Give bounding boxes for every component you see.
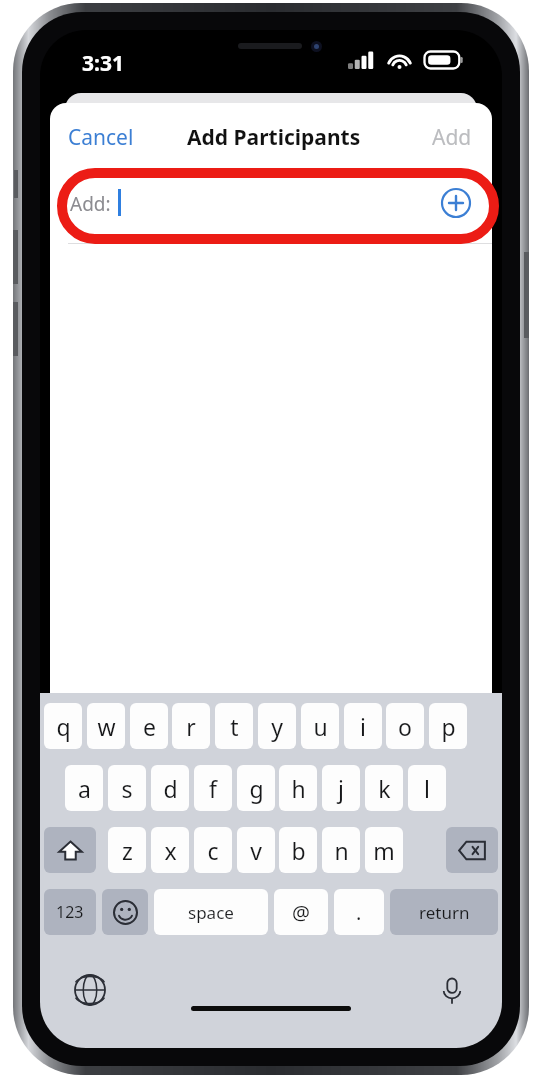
button[interactable]: Add contact [440,187,472,219]
button[interactable]: m [365,827,403,873]
staticText: y [271,711,283,742]
button[interactable]: k [365,765,403,811]
staticText: j [338,773,344,804]
button[interactable]: i [344,703,382,749]
staticText: 3:31 [82,49,124,78]
button[interactable]: q [44,703,82,749]
button[interactable]: z [108,827,146,873]
button[interactable]: a [65,765,103,811]
button[interactable]: 123 [44,889,96,935]
staticText: 123 [56,901,84,923]
button[interactable]: g [237,765,275,811]
staticText: m [373,835,395,866]
staticText: s [121,773,133,804]
button[interactable]: Cancel [60,117,142,158]
button[interactable]: Backspace [446,827,498,873]
button[interactable]: o [386,703,424,749]
staticText: g [249,773,264,804]
button[interactable]: n [322,827,360,873]
staticText: v [250,835,262,866]
button[interactable]: Change keyboard [72,972,108,1008]
staticText: l [424,773,430,804]
button[interactable]: r [172,703,210,749]
staticText: z [122,835,133,866]
staticText: n [334,835,349,866]
button[interactable]: Shift [44,827,96,873]
staticText: u [313,711,328,742]
staticText: q [56,711,71,742]
staticText: x [164,835,177,866]
button[interactable]: Add: [50,169,492,723]
button[interactable]: t [215,703,253,749]
button[interactable]: d [151,765,189,811]
staticText: return [419,901,470,924]
button[interactable]: return [390,889,498,935]
button[interactable]: c [194,827,232,873]
button[interactable]: s [108,765,146,811]
button[interactable]: @ [274,889,328,935]
button[interactable]: . [334,889,384,935]
staticText: r [186,711,196,742]
staticText: space [188,901,234,924]
staticText: c [207,835,219,866]
staticText: d [163,773,178,804]
staticText: e [143,711,156,742]
button[interactable]: w [87,703,125,749]
staticText: . [356,899,362,926]
staticText: Cancel [68,123,134,152]
staticText: k [378,773,391,804]
button[interactable]: Add [424,117,480,158]
button[interactable]: f [194,765,232,811]
button[interactable]: space [154,889,268,935]
staticText: f [209,773,217,804]
button[interactable]: l [408,765,446,811]
button[interactable]: v [237,827,275,873]
staticText: w [97,711,116,742]
staticText: o [398,711,412,742]
button[interactable]: p [429,703,467,749]
button[interactable]: h [279,765,317,811]
staticText: Add [432,123,472,152]
button[interactable]: j [322,765,360,811]
staticText: @ [292,899,310,926]
staticText: Add: [70,191,111,217]
button[interactable]: Dictation [434,972,470,1008]
staticText: h [291,773,306,804]
button[interactable]: Emoji [102,889,148,935]
staticText: t [230,711,239,742]
staticText: p [441,711,456,742]
staticText: i [360,711,366,742]
staticText: b [291,835,306,866]
staticText: a [78,773,91,804]
staticText: Add Participants [187,123,361,152]
button[interactable]: e [130,703,168,749]
button[interactable]: y [258,703,296,749]
button[interactable]: u [301,703,339,749]
button[interactable]: x [151,827,189,873]
button[interactable]: b [279,827,317,873]
